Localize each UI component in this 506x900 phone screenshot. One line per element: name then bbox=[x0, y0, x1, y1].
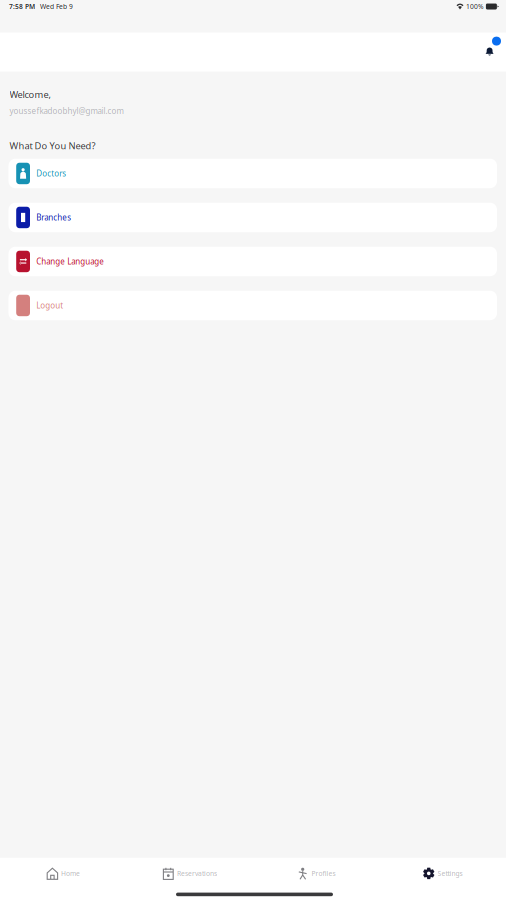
button[interactable]: Doctors bbox=[8, 159, 497, 188]
staticText: 100% bbox=[466, 2, 484, 11]
staticText: Reservations bbox=[177, 869, 217, 878]
staticText: youssefkadoobhyl@gmail.com bbox=[9, 106, 123, 116]
staticText: Profiles bbox=[311, 869, 335, 878]
staticText: Doctors bbox=[36, 168, 66, 179]
button[interactable]: Notifications bbox=[485, 37, 501, 57]
staticText: Change Language bbox=[36, 256, 104, 267]
staticText: 7:58 PM bbox=[9, 2, 35, 11]
button[interactable]: Logout bbox=[8, 291, 497, 320]
staticText: Branches bbox=[36, 212, 71, 223]
staticText: What Do You Need? bbox=[9, 139, 95, 152]
staticText: Settings bbox=[437, 869, 462, 878]
staticText: Logout bbox=[36, 300, 63, 311]
button[interactable]: Home bbox=[0, 859, 126, 887]
button[interactable]: Branches bbox=[8, 203, 497, 232]
staticText: Wed Feb 9 bbox=[40, 2, 73, 11]
button[interactable]: Change Language bbox=[8, 247, 497, 276]
button[interactable]: Settings bbox=[379, 859, 506, 887]
staticText: Home bbox=[61, 869, 80, 878]
button[interactable]: Profiles bbox=[253, 859, 379, 887]
staticText: Welcome, bbox=[9, 88, 51, 101]
button[interactable]: Reservations bbox=[126, 859, 253, 887]
